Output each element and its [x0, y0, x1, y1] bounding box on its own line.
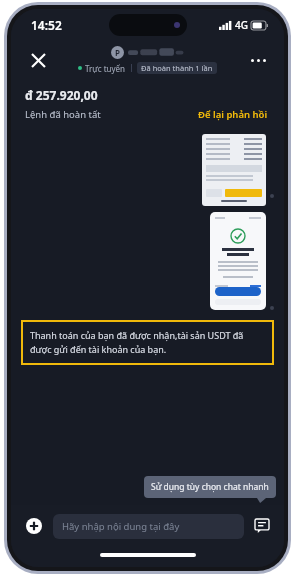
- staticText: Để lại phản hồi: [198, 108, 268, 121]
- staticText: Sử dụng tùy chọn chat nhanh: [151, 481, 269, 493]
- staticText: Hãy nhập nội dung tại đây: [62, 520, 180, 533]
- staticText: 4G: [235, 18, 248, 32]
- staticText: 14:52: [31, 17, 62, 33]
- button[interactable]: Transfer success receipt image: [202, 212, 274, 310]
- staticText: Đã hoàn thành 1 lần: [141, 63, 213, 73]
- staticText: Thanh toán của bạn đã được nhận,tài sản …: [30, 329, 265, 356]
- button[interactable]: More options: [244, 46, 272, 74]
- button[interactable]: Thanh toán của bạn đã được nhận,tài sản …: [21, 320, 274, 365]
- button[interactable]: Close: [23, 45, 53, 75]
- button[interactable]: Để lại phản hồi: [196, 107, 270, 122]
- staticText: Trực tuyến: [85, 63, 126, 74]
- staticText: đ 257.920,00: [25, 87, 98, 103]
- button[interactable]: Hãy nhập nội dung tại đây: [53, 514, 244, 539]
- button[interactable]: Payment document image: [202, 134, 274, 206]
- button[interactable]: Quick chat messages: [250, 514, 274, 538]
- button[interactable]: Add attachment: [21, 513, 47, 539]
- staticText: Lệnh đã hoàn tất: [25, 108, 101, 121]
- staticText: P: [115, 47, 120, 58]
- button[interactable]: Sử dụng tùy chọn chat nhanh: [144, 476, 276, 498]
